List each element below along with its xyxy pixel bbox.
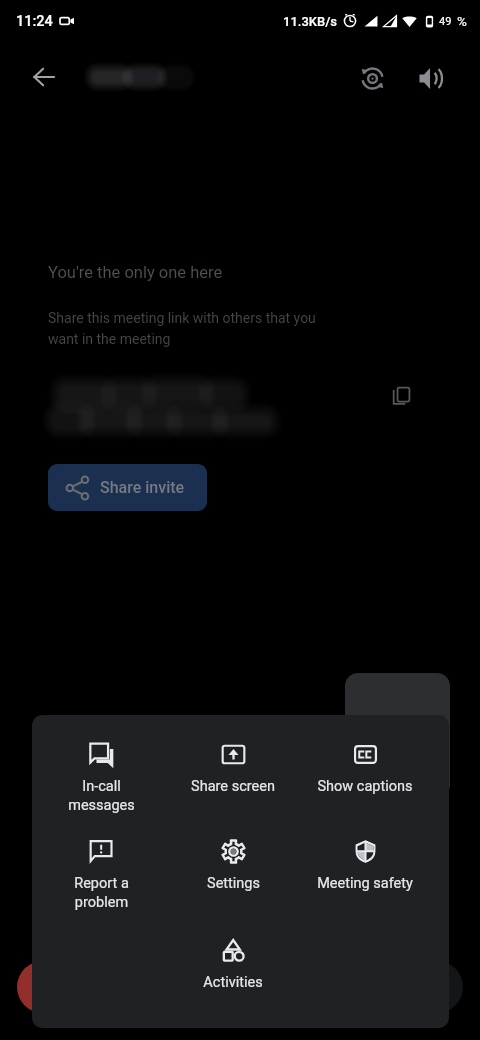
staticText: 11:24 (16, 13, 53, 30)
button[interactable]: Show captions (299, 736, 431, 801)
button[interactable]: In-call messages (35, 736, 167, 819)
button[interactable]: Activities (167, 932, 299, 997)
staticText: Share invite (100, 478, 185, 497)
staticText: Meeting safety (317, 875, 413, 892)
staticText: Settings (207, 875, 260, 892)
staticText: 11.3KB/s (283, 14, 338, 29)
button[interactable]: Share invite (48, 464, 207, 511)
staticText: Activities (203, 974, 263, 991)
staticText: In-call messages (68, 778, 135, 813)
button[interactable]: Copy meeting link (382, 378, 418, 414)
staticText: Share this meeting link with others that… (48, 310, 344, 347)
button[interactable]: Meeting safety (299, 833, 431, 898)
staticText: 49 (439, 15, 452, 28)
button[interactable]: Settings (167, 833, 299, 898)
staticText: Share screen (191, 778, 275, 795)
button[interactable]: Switch camera (350, 56, 395, 101)
button[interactable]: Share screen (167, 736, 299, 801)
button[interactable]: Speaker (408, 56, 453, 101)
button[interactable]: Back (22, 55, 66, 99)
button[interactable]: Report a problem (35, 833, 167, 916)
staticText: % (457, 13, 467, 29)
staticText: Report a problem (74, 875, 129, 910)
staticText: Show captions (317, 778, 413, 795)
button[interactable]: More options (411, 961, 463, 1013)
button[interactable]: Leave call (17, 961, 69, 1013)
staticText: You're the only one here (48, 263, 223, 282)
